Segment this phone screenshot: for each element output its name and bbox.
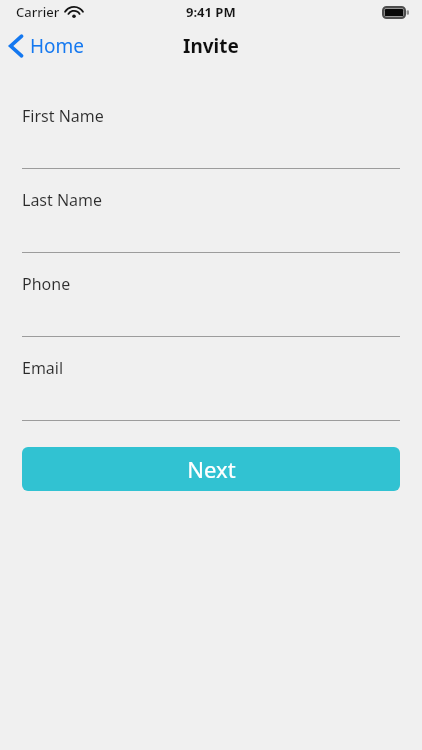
staticText: Invite [183, 33, 239, 59]
button[interactable]: Home [0, 27, 97, 65]
other: Battery full [382, 6, 409, 19]
button[interactable]: Next [22, 447, 400, 491]
button[interactable]: Email [0, 357, 422, 421]
staticText: 9:41 PM [186, 3, 236, 21]
staticText: Home [30, 33, 85, 59]
staticText: Phone [22, 273, 71, 295]
staticText: Carrier [16, 3, 60, 21]
other: Wi-Fi [66, 6, 82, 18]
staticText: Email [22, 357, 64, 379]
button[interactable]: Last Name [0, 189, 422, 253]
button[interactable]: Phone [0, 273, 422, 337]
staticText: First Name [22, 105, 104, 127]
staticText: Next [187, 454, 236, 484]
button[interactable]: First Name [0, 105, 422, 169]
staticText: Last Name [22, 189, 103, 211]
